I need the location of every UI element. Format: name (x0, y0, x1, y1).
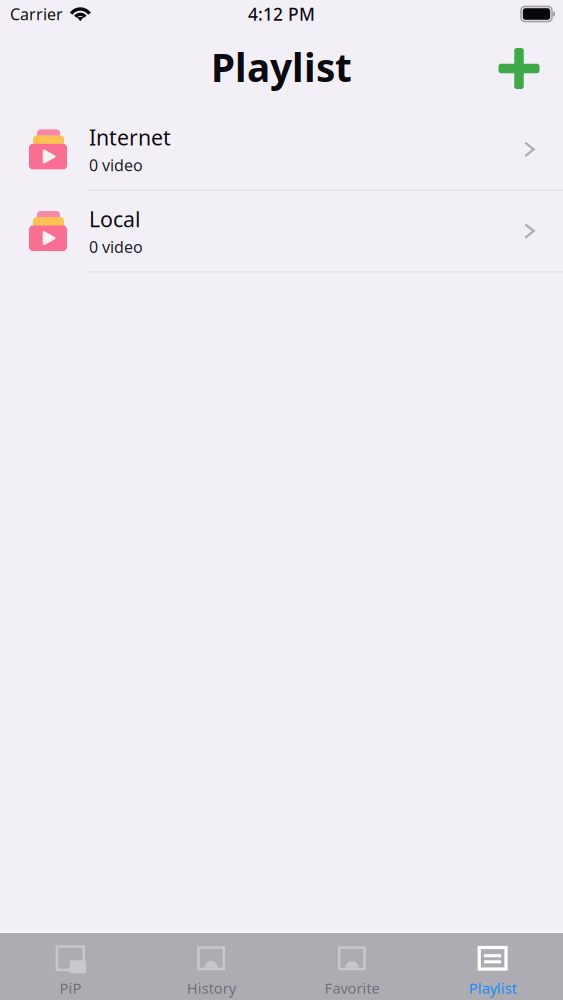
staticText: Internet (89, 123, 171, 151)
button[interactable]: History (141, 931, 282, 1000)
button[interactable]: Local (0, 191, 563, 272)
staticText: 0 video (89, 236, 143, 257)
button[interactable]: PiP (0, 931, 141, 1000)
staticText: Carrier (10, 3, 63, 25)
staticText: Playlist (469, 978, 517, 998)
staticText: 0 video (89, 154, 143, 176)
staticText: PiP (59, 978, 81, 998)
button[interactable]: Add playlist (497, 46, 541, 90)
button[interactable]: Favorite (281, 931, 422, 1000)
staticText: Favorite (324, 978, 379, 998)
button[interactable]: Internet (0, 109, 563, 191)
staticText: Playlist (211, 41, 352, 93)
staticText: 4:12 PM (248, 2, 315, 25)
button[interactable]: Playlist (422, 931, 563, 1000)
staticText: Local (89, 205, 141, 233)
staticText: History (187, 978, 236, 998)
